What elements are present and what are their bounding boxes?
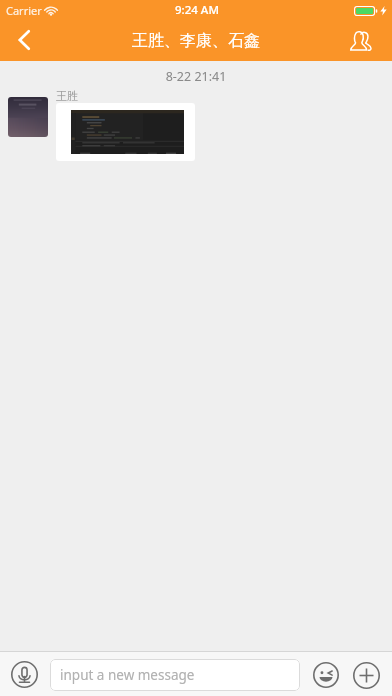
button[interactable]: More [350,659,382,691]
button[interactable]: Group members [338,20,382,61]
staticText: Carrier [6,3,42,18]
staticText: 王胜 [56,89,78,103]
button[interactable]: Voice message [8,658,41,691]
staticText: 王胜、李康、石鑫 [132,31,260,51]
staticText: 8-22 21:41 [0,68,392,85]
button[interactable]: input a new message [50,659,300,691]
staticText: input a new message [60,666,195,684]
button[interactable]: Emoji [310,659,342,691]
button[interactable]: Back [0,20,46,61]
staticText: 9:24 AM [175,2,219,18]
button[interactable] [56,103,195,161]
button[interactable]: Avatar [8,97,48,137]
